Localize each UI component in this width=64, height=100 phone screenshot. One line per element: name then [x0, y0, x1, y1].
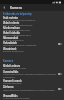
staticText: Rácsvonalak: [3, 36, 19, 39]
button[interactable]: Zárhang: [0, 84, 64, 93]
staticText: Felbontás és képarány: [3, 12, 32, 16]
staticText: Az összes beállítás törlése: [3, 97, 30, 99]
staticText: Videó kódolás: [3, 31, 21, 34]
staticText: Videó mérete: [3, 21, 20, 24]
staticText: Zárhang: [3, 85, 14, 88]
staticText: 12 MP 4:3 (4000x3000 képpont): [3, 19, 36, 21]
staticText: Vízszintező: [3, 47, 17, 50]
staticText: Kijelző aránya: [3, 64, 20, 67]
button[interactable]: Hangerő gomb: [0, 78, 64, 84]
staticText: Hang lejátszása fényképezéskor és felvét…: [3, 89, 55, 92]
staticText: Hangerő gomb: [3, 79, 22, 82]
staticText: Jelenleg kikapcsolva: [3, 39, 24, 41]
button[interactable]: Back: [0, 4, 8, 11]
button[interactable]: Gyorsindítás: [0, 69, 64, 78]
staticText: Képformátum: [3, 26, 21, 29]
staticText: Gyorsindítás: [3, 70, 19, 73]
staticText: Jelenleg kikapcsolva: [3, 50, 24, 52]
staticText: JPEG alapértelmezett mód: [3, 29, 30, 31]
button[interactable]: Kijelző aránya: [0, 63, 64, 69]
button[interactable]: Toggle: [58, 88, 62, 90]
staticText: Helyadatok mentése a képekhez: [3, 44, 37, 46]
staticText: Nyomd meg kétszer a bekapcsológombot a k…: [3, 73, 57, 78]
button[interactable]: Videó mérete: [0, 21, 64, 26]
button[interactable]: Rácsvonalak: [0, 36, 64, 41]
button[interactable]: Fotó mérete: [0, 16, 64, 21]
staticText: Magas hatékonyságú HEVC: [3, 34, 32, 36]
staticText: Fénykép készítése: [3, 82, 22, 84]
button[interactable]: Helyadatok: [0, 41, 64, 46]
button[interactable]: Képformátum: [0, 26, 64, 31]
staticText: FHD 1080p, 30 képkocka/mp: [3, 24, 33, 26]
staticText: Helyadatok: [3, 41, 17, 44]
button[interactable]: Vízszintező: [0, 46, 64, 52]
button[interactable]: Visszaállítás: [0, 93, 64, 100]
button[interactable]: Toggle: [58, 43, 62, 45]
staticText: Teljes képernyős nézet: [3, 67, 27, 69]
staticText: Kamera: [3, 59, 13, 63]
staticText: Fotó mérete: [3, 16, 18, 19]
staticText: Visszaállítás: [3, 94, 18, 97]
button[interactable]: Videó kódolás: [0, 31, 64, 36]
staticText: Kamera: [10, 6, 22, 10]
button[interactable]: Toggle: [58, 73, 62, 75]
